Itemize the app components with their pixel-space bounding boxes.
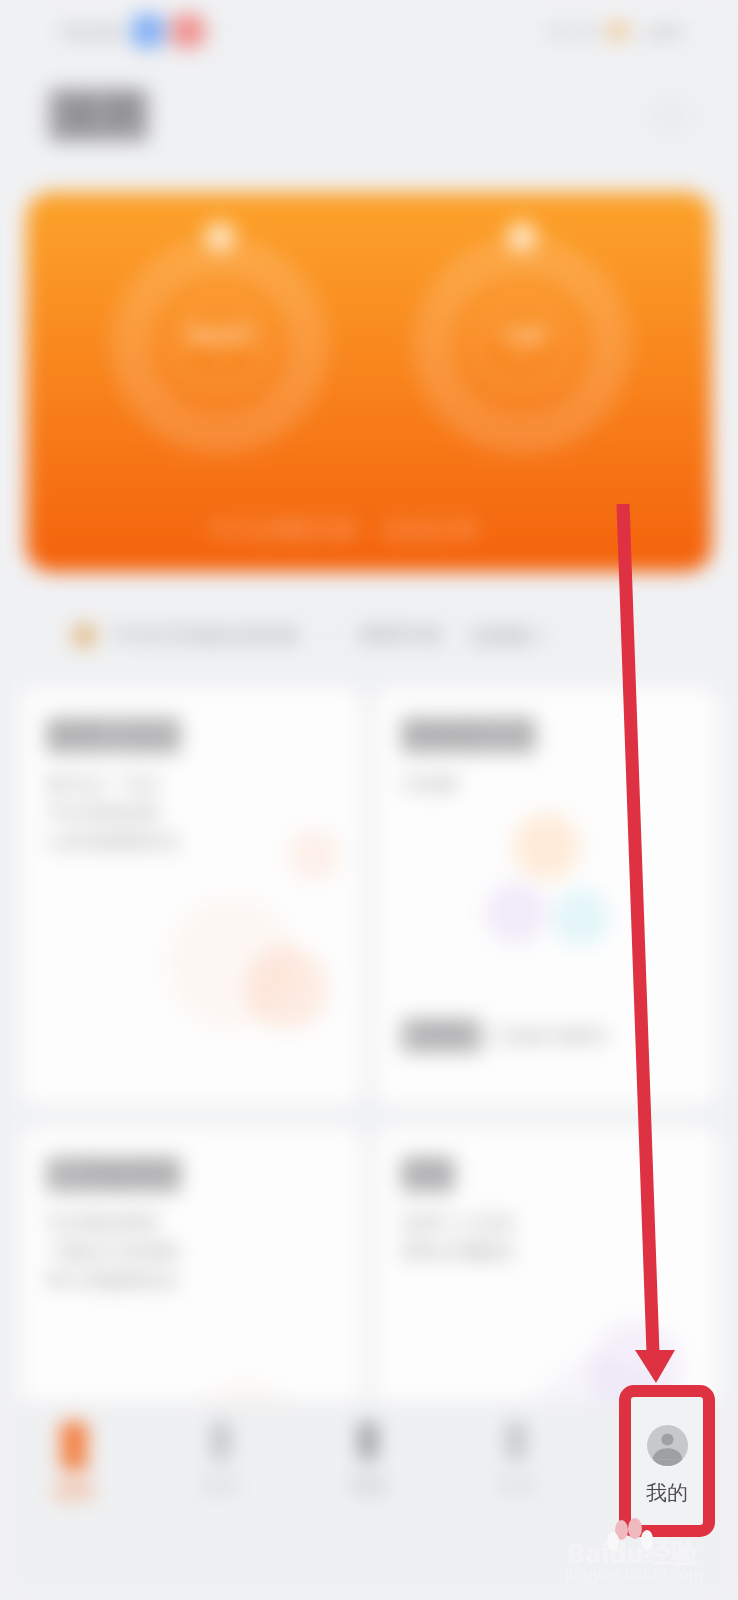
button[interactable]: 档案 (375, 1127, 718, 1544)
staticText: 健康小知识 (49, 719, 179, 752)
button[interactable]: 我的 (631, 1397, 703, 1525)
staticText: 了解自己的情绪 (46, 1240, 179, 1264)
staticText: 去锻炼 > (468, 621, 549, 650)
staticText: ·· (214, 16, 226, 46)
staticText: 心理健康测 (49, 1158, 179, 1191)
staticText: 健康 (54, 1478, 94, 1503)
staticText: 和心理健康状态 (46, 1269, 179, 1293)
button[interactable]: 智能硬件库 (375, 688, 718, 1105)
button[interactable]: 消息 (294, 1422, 442, 1600)
button[interactable]: 健康 (0, 1422, 147, 1600)
staticText: 智能硬件库 (404, 719, 534, 752)
button[interactable]: 发现 (442, 1422, 590, 1600)
staticText: 已连接 电量86 (492, 1023, 608, 1048)
staticText: 今日步数目标 (208, 514, 358, 545)
staticText: 心血管健康状况 (46, 830, 179, 854)
staticText: 专业量表测评 (46, 1211, 160, 1235)
staticText: 健康 (57, 89, 141, 142)
button[interactable]: 心理健康测 (20, 1127, 362, 1544)
staticText: 获取专属建议 (401, 1240, 515, 1264)
staticText: 运动记录 (382, 515, 478, 545)
staticText: 手环 (417, 1020, 467, 1051)
staticText: 查看详情 (358, 622, 442, 648)
staticText: 10:24 (58, 15, 120, 48)
staticText: 今日已完成运动目标 (111, 622, 300, 648)
button[interactable]: 我的 (590, 1422, 738, 1600)
staticText: 我的 (646, 1480, 688, 1506)
staticText: 126 (499, 316, 546, 353)
button[interactable]: 8423 (26, 192, 712, 572)
staticText: 档案 (402, 1158, 454, 1191)
staticText: 我的 (644, 1473, 684, 1498)
button[interactable]: 健康小知识 (20, 688, 362, 1105)
button[interactable]: 服务 (147, 1422, 294, 1600)
staticText: Baidu经验 (567, 1534, 698, 1571)
staticText: 已连接 (401, 772, 458, 796)
staticText: 8423 (189, 316, 251, 353)
